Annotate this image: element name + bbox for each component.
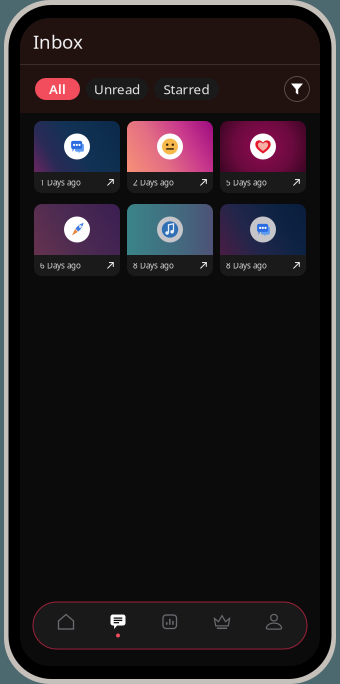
staticText: Unread bbox=[94, 80, 140, 98]
button[interactable]: 6 Days ago bbox=[34, 204, 120, 276]
staticText: All bbox=[49, 80, 66, 98]
button[interactable]: Profile bbox=[248, 605, 300, 645]
button[interactable]: Home bbox=[40, 605, 92, 645]
button[interactable]: Filter bbox=[283, 75, 311, 103]
button[interactable]: 2 Days ago bbox=[127, 121, 213, 193]
button[interactable]: 8 Days ago bbox=[127, 204, 213, 276]
staticText: Starred bbox=[163, 80, 209, 98]
button[interactable]: 8 Days ago bbox=[220, 204, 306, 276]
staticText: 1 Days ago bbox=[40, 177, 81, 188]
button[interactable]: 5 Days ago bbox=[220, 121, 306, 193]
staticText: 2 Days ago bbox=[133, 177, 174, 188]
button[interactable]: Stats bbox=[144, 605, 196, 645]
staticText: 6 Days ago bbox=[40, 260, 81, 271]
button[interactable]: Messages bbox=[92, 605, 144, 645]
button[interactable]: 1 Days ago bbox=[34, 121, 120, 193]
staticText: 5 Days ago bbox=[226, 177, 267, 188]
button[interactable]: All bbox=[35, 78, 80, 100]
button[interactable]: Starred bbox=[154, 78, 219, 100]
staticText: Inbox bbox=[33, 29, 83, 54]
button[interactable]: Premium bbox=[196, 605, 248, 645]
staticText: 8 Days ago bbox=[133, 260, 174, 271]
staticText: 8 Days ago bbox=[226, 260, 267, 271]
button[interactable]: Unread bbox=[86, 78, 148, 100]
